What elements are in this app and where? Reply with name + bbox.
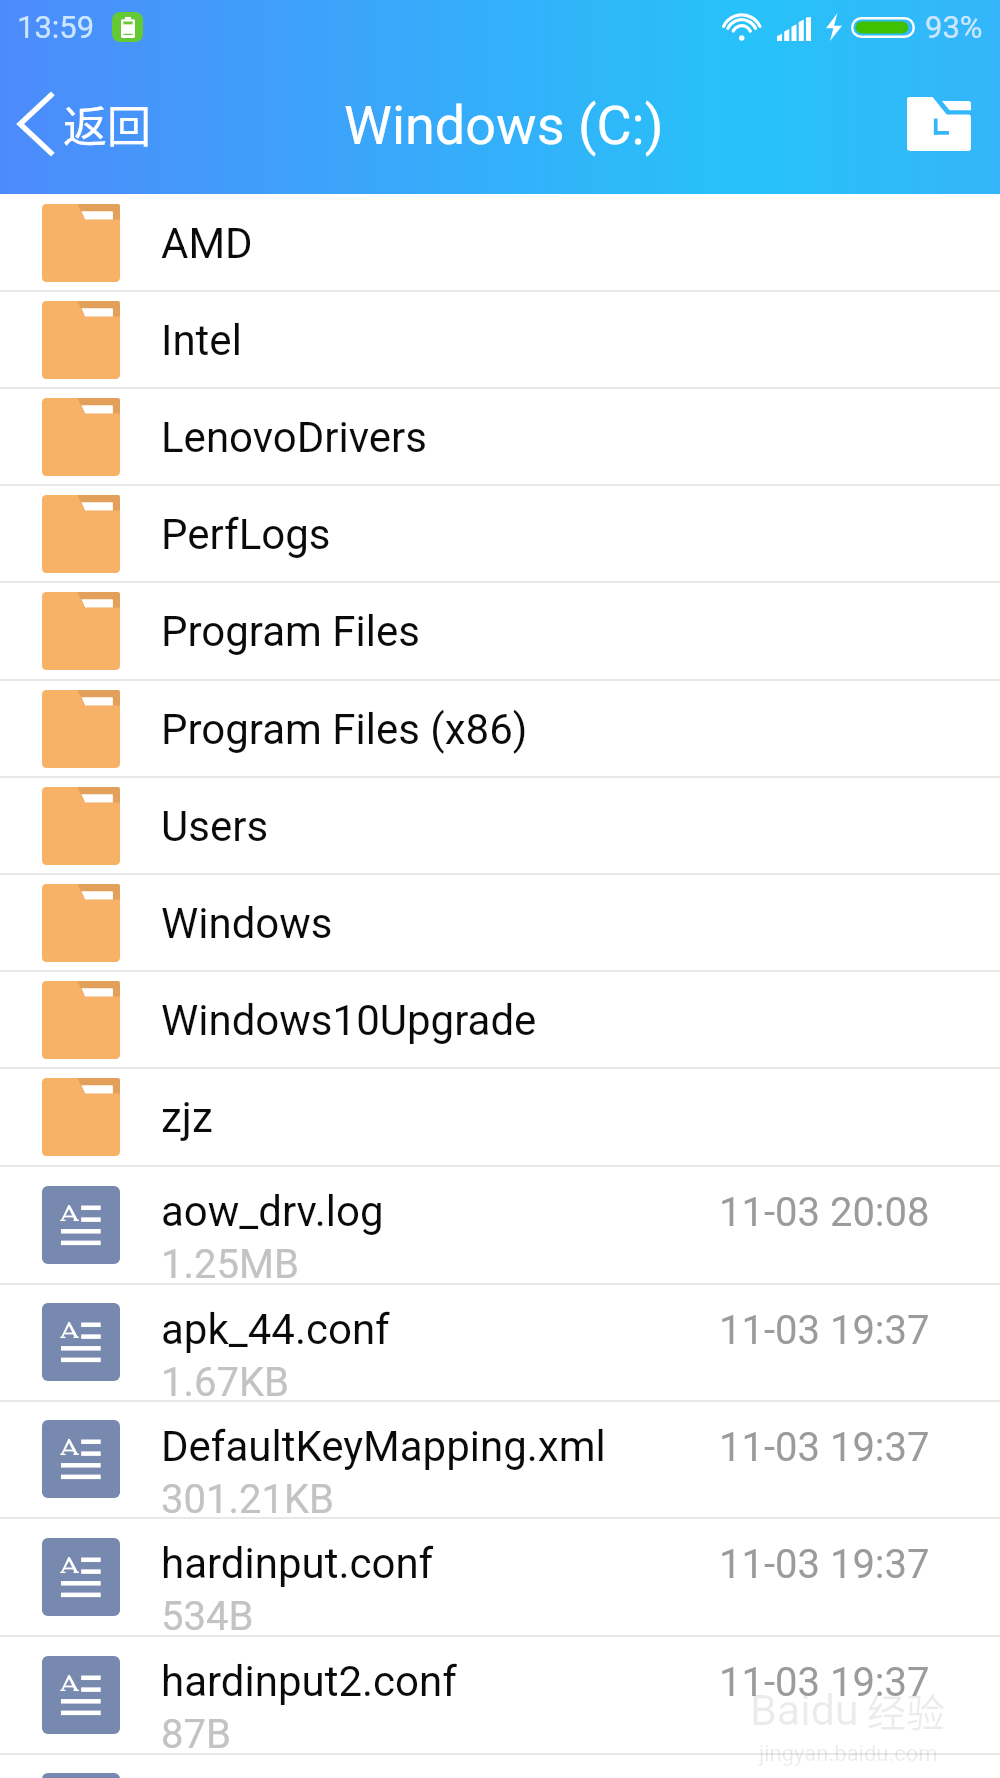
staticText: Baidu bbox=[750, 1685, 859, 1735]
staticText: PerfLogs bbox=[161, 510, 331, 559]
staticText: 11-03 19:37 bbox=[719, 1307, 930, 1354]
staticText: LenovoDrivers bbox=[161, 413, 427, 462]
staticText: 1.67KB bbox=[161, 1359, 290, 1406]
button[interactable]: Users bbox=[0, 778, 1000, 875]
button[interactable]: apk_44.conf bbox=[0, 1285, 1000, 1402]
button[interactable]: Program Files (x86) bbox=[0, 681, 1000, 778]
staticText: hardinput.conf bbox=[161, 1539, 434, 1588]
staticText: Windows (C:) bbox=[344, 94, 664, 157]
button[interactable]: Windows bbox=[0, 875, 1000, 972]
staticText: 11-03 19:37 bbox=[719, 1541, 930, 1588]
staticText: Program Files bbox=[161, 607, 420, 656]
button[interactable]: Windows10Upgrade bbox=[0, 972, 1000, 1069]
staticText: 11-03 20:08 bbox=[719, 1189, 930, 1236]
staticText: 87B bbox=[161, 1711, 231, 1758]
staticText: hardinput2.conf bbox=[161, 1657, 457, 1706]
button[interactable]: hardinput3.conf bbox=[0, 1755, 1000, 1778]
staticText: apk_44.conf bbox=[161, 1305, 390, 1354]
staticText: 93% bbox=[925, 9, 983, 45]
staticText: 11-03 19:37 bbox=[719, 1659, 930, 1706]
button[interactable]: Intel bbox=[0, 292, 1000, 389]
staticText: 11-03 19:37 bbox=[719, 1424, 930, 1471]
staticText: Windows bbox=[161, 899, 333, 948]
button[interactable]: 返回 bbox=[0, 80, 169, 168]
button[interactable]: DefaultKeyMapping.xml bbox=[0, 1402, 1000, 1519]
staticText: aow_drv.log bbox=[161, 1187, 384, 1236]
staticText: jingyan.baidu.com bbox=[759, 1741, 938, 1767]
staticText: 1.25MB bbox=[161, 1241, 299, 1288]
button[interactable]: Recent files bbox=[891, 81, 1000, 167]
staticText: Program Files (x86) bbox=[161, 705, 528, 754]
staticText: zjz bbox=[161, 1093, 213, 1142]
button[interactable]: Program Files bbox=[0, 583, 1000, 681]
staticText: 534B bbox=[161, 1593, 254, 1640]
button[interactable]: hardinput.conf bbox=[0, 1519, 1000, 1637]
staticText: Users bbox=[161, 802, 269, 851]
staticText: 返回 bbox=[63, 92, 151, 156]
button[interactable]: PerfLogs bbox=[0, 486, 1000, 583]
staticText: 301.21KB bbox=[161, 1476, 334, 1523]
button[interactable]: zjz bbox=[0, 1069, 1000, 1167]
staticText: 经验 bbox=[867, 1682, 946, 1738]
button[interactable]: aow_drv.log bbox=[0, 1167, 1000, 1285]
button[interactable]: LenovoDrivers bbox=[0, 389, 1000, 486]
staticText: Intel bbox=[161, 316, 242, 365]
staticText: DefaultKeyMapping.xml bbox=[161, 1422, 606, 1471]
staticText: Windows10Upgrade bbox=[161, 996, 537, 1045]
staticText: AMD bbox=[161, 219, 253, 268]
staticText: 13:59 bbox=[17, 9, 95, 45]
button[interactable]: hardinput2.conf bbox=[0, 1637, 1000, 1755]
button[interactable]: AMD bbox=[0, 195, 1000, 292]
